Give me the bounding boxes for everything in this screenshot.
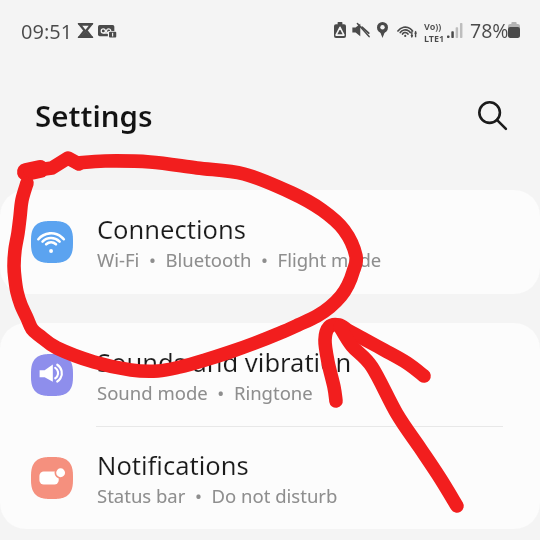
staticText: Status bar • Do not disturb [97, 483, 338, 508]
button[interactable]: Sounds and vibration [0, 323, 540, 426]
staticText: Settings [35, 95, 153, 135]
staticText: Vo)) [424, 20, 442, 32]
button[interactable]: Connections [0, 190, 540, 294]
staticText: Sounds and vibration [97, 345, 352, 380]
staticText: Sound mode • Ringtone [97, 380, 313, 405]
staticText: Connections [97, 212, 246, 247]
staticText: Wi-Fi • Bluetooth • Flight mode [97, 247, 382, 272]
staticText: 09:51 [21, 18, 73, 45]
staticText: 78% [470, 17, 509, 44]
staticText: LTE1 [424, 32, 445, 44]
button[interactable]: Search [469, 93, 515, 139]
staticText: Notifications [97, 448, 249, 483]
button[interactable]: Notifications [0, 426, 540, 529]
